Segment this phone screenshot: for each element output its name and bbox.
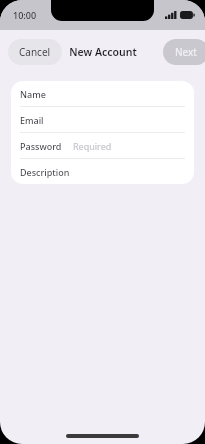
button[interactable]: Password	[11, 133, 194, 159]
button[interactable]: Email	[11, 107, 194, 133]
staticText: Next	[175, 45, 197, 59]
staticText: Email	[20, 114, 44, 126]
staticText: Description	[20, 166, 70, 178]
button[interactable]: Name	[11, 81, 194, 107]
staticText: Name	[20, 88, 46, 100]
staticText: Cancel	[19, 45, 51, 59]
button[interactable]: Description	[11, 159, 194, 184]
staticText: 10:00	[13, 9, 37, 21]
staticText: Required	[73, 140, 112, 152]
staticText: New Account	[69, 45, 137, 59]
button[interactable]: Cancel	[8, 39, 62, 65]
button[interactable]: Next	[163, 39, 205, 65]
staticText: Password	[20, 140, 62, 152]
